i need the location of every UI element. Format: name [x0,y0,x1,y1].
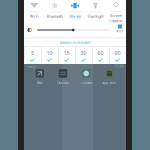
staticText: Auto [116,29,123,33]
staticText: 90 [114,49,120,57]
staticText: Snooze in minutes [59,39,90,45]
staticText: App Store [102,81,116,85]
button[interactable]: Wi-Fi [24,0,44,22]
button[interactable]: 90 [109,47,126,63]
staticText: Bluetooth [47,14,63,19]
button[interactable]: Contacts [75,69,98,86]
staticText: orange [26,65,36,68]
staticText: Calculator [56,81,69,85]
button[interactable]: 15 [58,47,75,63]
button[interactable]: 60 [92,47,109,63]
button[interactable]: Bluetooth [44,0,65,22]
staticText: Contacts [81,81,92,85]
button[interactable]: Safari [28,69,51,86]
button[interactable]: Screen [106,0,126,22]
button[interactable]: Vibrate [65,0,85,22]
staticText: 5 [31,49,34,57]
staticText: Vibrate [69,14,81,19]
staticText: Wi-Fi [30,14,39,19]
staticText: 60 [97,49,103,57]
staticText: 10 [46,49,52,57]
button[interactable]: Flashlight [85,0,106,22]
button[interactable]: Auto [114,22,126,37]
staticText: 11:24 [114,65,123,68]
staticText: Safari [37,81,43,85]
button[interactable]: 30 [75,47,92,63]
button[interactable]: 5 [24,47,41,63]
button[interactable]: Calculator [51,69,75,86]
button[interactable]: 10 [41,47,58,63]
staticText: Flashlight [87,14,103,19]
button[interactable]: Snooze in minutes [24,38,126,46]
staticText: 30 [80,49,86,57]
staticText: rotation [109,18,122,23]
staticText: 15 [63,49,69,57]
button[interactable]: App Store [98,69,121,86]
staticText: Screen [110,13,122,18]
